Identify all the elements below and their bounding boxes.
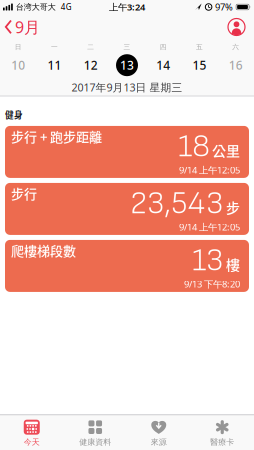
button[interactable]: 15: [181, 52, 218, 78]
staticText: 六: [232, 43, 239, 51]
button[interactable]: 步行: [5, 183, 249, 235]
staticText: 9/13 下午8:20: [184, 278, 240, 290]
staticText: 三: [123, 43, 130, 51]
staticText: 一: [51, 43, 58, 51]
button[interactable]: 醫療卡: [190, 419, 254, 447]
staticText: 健康資料: [79, 437, 111, 447]
staticText: 上午3:24: [109, 1, 145, 13]
staticText: 今天: [24, 437, 40, 447]
staticText: 12: [84, 57, 98, 73]
staticText: 9/14 上午12:05: [179, 164, 240, 176]
button[interactable]: 16: [218, 52, 254, 78]
staticText: 13: [120, 57, 134, 73]
button[interactable]: 14: [145, 52, 181, 78]
staticText: 五: [196, 43, 203, 51]
staticText: 四: [160, 43, 167, 51]
staticText: 日: [15, 43, 22, 51]
button[interactable]: 13: [109, 52, 145, 78]
staticText: 9月: [15, 16, 40, 38]
button[interactable]: 健康檔案: [228, 18, 254, 35]
button[interactable]: 9月: [0, 16, 40, 38]
staticText: 4G: [61, 2, 72, 12]
staticText: 13: [192, 241, 224, 280]
button[interactable]: 爬樓梯段數: [5, 240, 249, 292]
button[interactable]: 步行 + 跑步距離: [5, 126, 249, 178]
button[interactable]: 健康資料: [63, 419, 127, 447]
staticText: 15: [193, 57, 207, 73]
button[interactable]: 12: [73, 52, 109, 78]
staticText: 二: [87, 43, 94, 51]
staticText: 97%: [215, 1, 233, 13]
button[interactable]: 10: [0, 52, 36, 78]
staticText: 健身: [5, 108, 23, 121]
staticText: 步: [226, 197, 240, 217]
button[interactable]: 今天: [0, 419, 63, 447]
staticText: 2017年9月13日 星期三: [71, 80, 182, 94]
staticText: 9/14 上午12:05: [179, 221, 240, 233]
staticText: 樓: [226, 254, 240, 274]
staticText: 台湾大哥大: [16, 2, 56, 12]
button[interactable]: 來源: [127, 419, 190, 447]
staticText: 14: [156, 57, 170, 73]
staticText: 16: [229, 57, 243, 73]
staticText: 23,543: [130, 184, 224, 223]
staticText: 18: [178, 127, 210, 166]
staticText: 步行 + 跑步距離: [11, 127, 102, 146]
staticText: 10: [11, 57, 25, 73]
button[interactable]: 11: [36, 52, 73, 78]
staticText: 爬樓梯段數: [11, 241, 76, 260]
staticText: 11: [47, 57, 61, 73]
staticText: 醫療卡: [210, 437, 234, 447]
staticText: 步行: [11, 184, 37, 203]
staticText: 公里: [212, 140, 240, 160]
staticText: 來源: [151, 437, 167, 447]
